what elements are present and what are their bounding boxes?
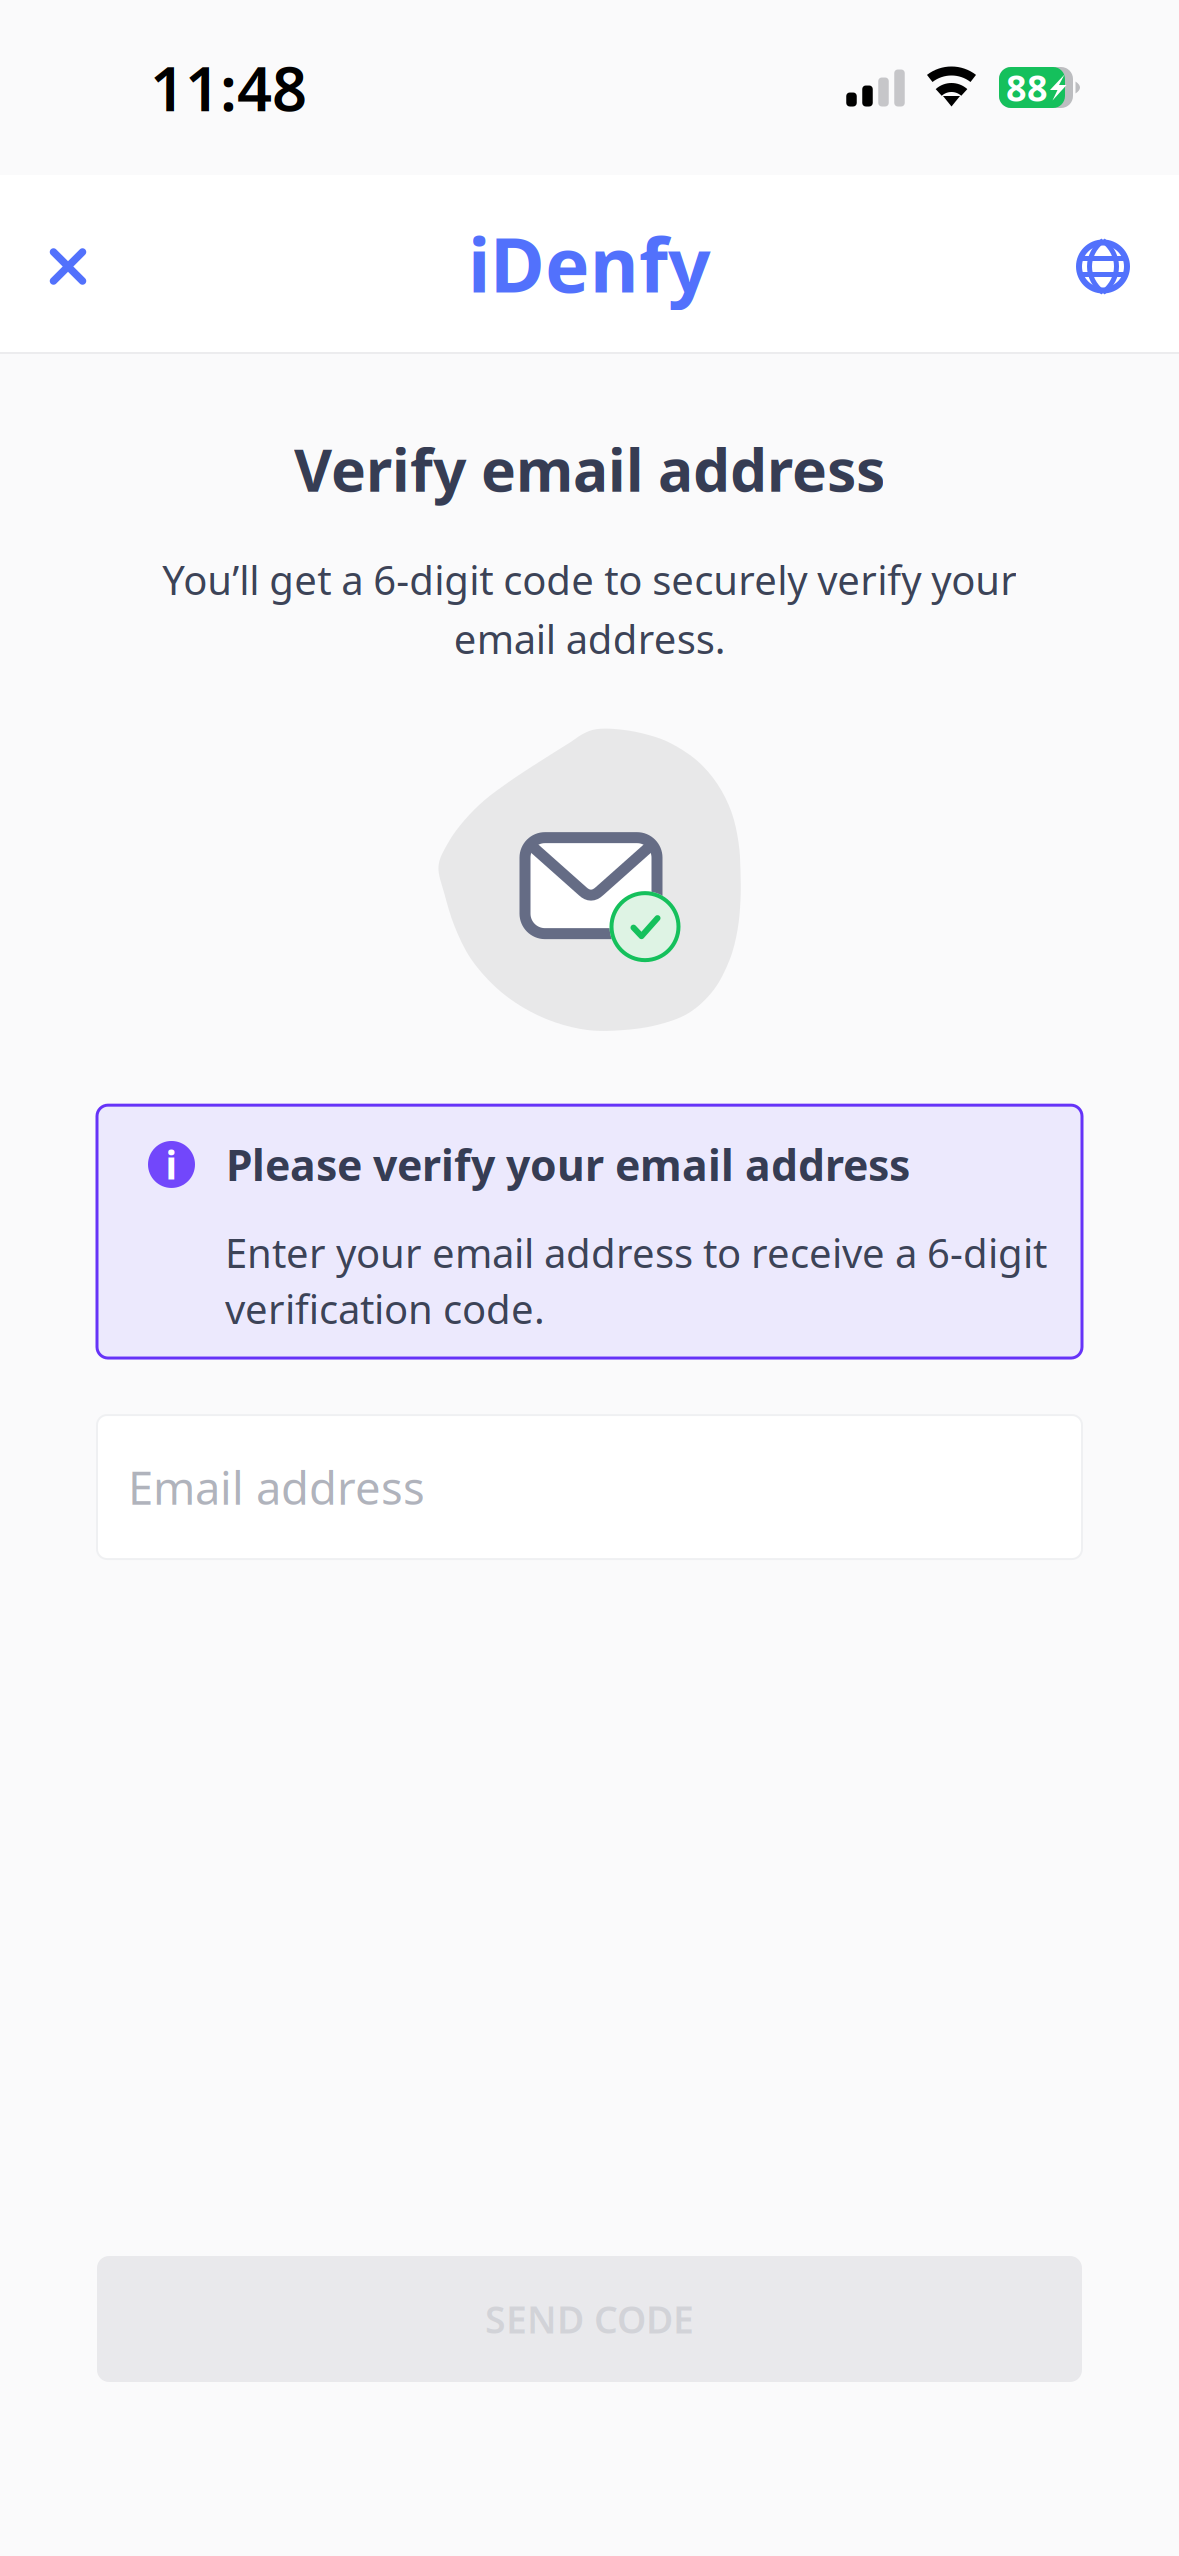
staticText: Email address (128, 1457, 425, 1517)
staticText: 11:48 (150, 47, 307, 128)
staticText: Please verify your email address (226, 1136, 910, 1193)
staticText: Verify email address (294, 430, 885, 508)
button[interactable]: Language (1055, 218, 1151, 314)
button[interactable]: Close (20, 218, 116, 314)
staticText: i (165, 1139, 177, 1190)
staticText: iDenfy (468, 214, 711, 313)
staticText: SEND CODE (485, 2294, 694, 2344)
staticText: You’ll get a 6-digit code to securely ve… (162, 553, 1017, 665)
staticText: Enter your email address to receive a 6-… (225, 1226, 1047, 1335)
staticText: 88 (1006, 64, 1048, 111)
